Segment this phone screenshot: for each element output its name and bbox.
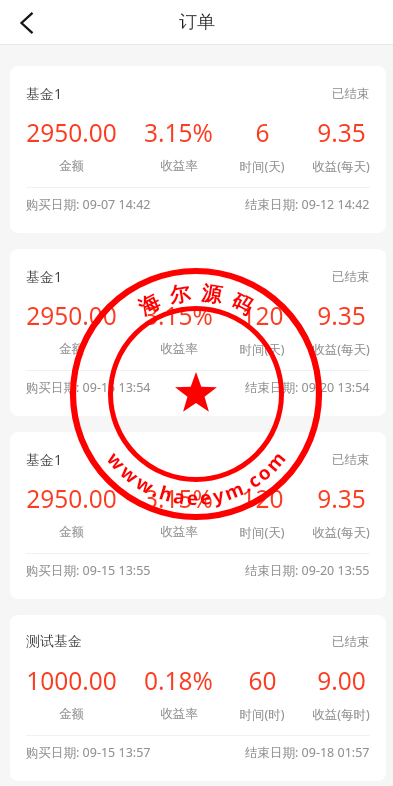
staticText: 结束日期: 09-20 13:54 [245,379,370,396]
staticText: 6 [255,116,270,149]
staticText: 结束日期: 09-20 13:55 [245,562,370,579]
staticText: 金额 [59,341,84,357]
staticText: 基金1 [26,450,63,469]
staticText: 收益率 [160,524,198,540]
button[interactable]: 基金1 [10,432,386,599]
staticText: 收益率 [160,341,198,357]
staticText: 购买日期: 09-15 13:57 [26,744,151,761]
staticText: 基金1 [26,267,63,286]
staticText: 金额 [59,524,84,540]
staticText: 购买日期: 09-07 14:42 [26,196,151,213]
button[interactable]: 测试基金 [10,615,386,781]
staticText: 0.18% [144,664,213,697]
staticText: 120 [241,482,284,515]
staticText: 时间(天) [239,524,285,541]
staticText: 9.35 [317,116,366,149]
staticText: 已结束 [332,86,370,102]
staticText: 结束日期: 09-12 14:42 [245,196,370,213]
staticText: 3.15% [144,299,213,332]
staticText: 时间(天) [239,158,285,175]
staticText: 时间(时) [239,706,285,723]
staticText: 收益(每天) [312,158,370,175]
staticText: 收益(每天) [312,524,370,541]
staticText: 收益(每天) [312,341,370,358]
staticText: 已结束 [332,634,370,650]
staticText: 订单 [179,11,215,34]
staticText: 收益率 [160,158,198,174]
staticText: 3.15% [144,482,213,515]
staticText: 基金1 [26,84,63,103]
staticText: 金额 [59,158,84,174]
staticText: 9.00 [317,664,366,697]
staticText: 2950.00 [26,482,117,515]
staticText: 9.35 [317,299,366,332]
staticText: 3.15% [144,116,213,149]
staticText: 金额 [59,706,84,722]
staticText: 测试基金 [26,633,82,651]
staticText: 2950.00 [26,299,117,332]
button[interactable]: 基金1 [10,249,386,416]
staticText: 收益率 [160,706,198,722]
button[interactable]: Back [0,0,54,45]
staticText: 60 [248,664,277,697]
button[interactable]: 基金1 [10,66,386,233]
staticText: 购买日期: 09-15 13:54 [26,379,151,396]
staticText: 9.35 [317,482,366,515]
staticText: 120 [241,299,284,332]
staticText: 结束日期: 09-18 01:57 [245,744,370,761]
staticText: 已结束 [332,452,370,468]
staticText: 时间(天) [239,341,285,358]
staticText: 购买日期: 09-15 13:55 [26,562,151,579]
staticText: 1000.00 [26,664,117,697]
staticText: 已结束 [332,269,370,285]
staticText: 收益(每时) [312,706,370,723]
staticText: 2950.00 [26,116,117,149]
